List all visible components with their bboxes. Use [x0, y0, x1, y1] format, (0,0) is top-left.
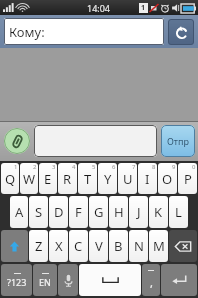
button[interactable]: Y [98, 163, 117, 194]
button[interactable]: Voice input [58, 264, 78, 296]
staticText: O [162, 170, 173, 188]
staticText: W [23, 170, 36, 188]
staticText: ?123 [7, 276, 27, 288]
staticText: 1 [14, 163, 18, 171]
button[interactable]: Enter [161, 264, 197, 296]
button[interactable]: Undo [168, 19, 194, 45]
button[interactable]: Shift [1, 230, 28, 262]
staticText: F [75, 203, 82, 221]
staticText: , [150, 275, 153, 290]
button[interactable]: E [39, 163, 57, 194]
button[interactable]: X [49, 230, 68, 262]
staticText: B [114, 237, 123, 255]
button[interactable]: T [78, 163, 97, 194]
button[interactable]: M [149, 230, 168, 262]
staticText: Q [5, 170, 16, 188]
staticText: 1 [141, 3, 146, 13]
staticText: 5 [92, 163, 96, 171]
button[interactable]: I [138, 163, 157, 194]
button[interactable]: Language [33, 264, 57, 296]
button[interactable]: Comma [142, 264, 160, 296]
button[interactable]: Z [29, 230, 48, 262]
button[interactable]: Q [1, 163, 19, 194]
staticText: 2 [33, 163, 37, 171]
staticText: 7 [132, 163, 136, 171]
staticText: J [137, 203, 141, 221]
staticText: S [35, 203, 43, 221]
staticText: L [175, 203, 182, 221]
button[interactable]: Space [79, 264, 141, 296]
button[interactable]: V [89, 230, 108, 262]
button[interactable]: D [49, 196, 68, 228]
button[interactable]: U [118, 163, 137, 194]
staticText: Z [35, 237, 43, 255]
button[interactable]: A [10, 196, 28, 228]
button[interactable]: S [29, 196, 48, 228]
button[interactable]: W [20, 163, 38, 194]
staticText: V [95, 237, 103, 255]
staticText: T [84, 170, 92, 188]
staticText: C [74, 237, 83, 255]
button[interactable]: C [69, 230, 88, 262]
staticText: M [153, 237, 165, 255]
button[interactable]: Кому: [4, 18, 164, 45]
staticText: N [134, 237, 144, 255]
staticText: K [154, 203, 163, 221]
button[interactable]: Backspace [169, 230, 197, 262]
staticText: P [184, 170, 192, 188]
staticText: H [114, 203, 124, 221]
staticText: E [44, 170, 52, 188]
staticText: 0 [192, 163, 196, 171]
button[interactable]: F [69, 196, 88, 228]
staticText: 4 [72, 163, 76, 171]
staticText: 14:04 [87, 2, 111, 14]
staticText: Отпр [167, 135, 189, 147]
staticText: 3 [52, 163, 56, 171]
button[interactable]: H [109, 196, 128, 228]
staticText: Кому: [9, 23, 45, 41]
button[interactable] [34, 125, 157, 157]
staticText: G [94, 203, 104, 221]
staticText: R [63, 170, 72, 188]
button[interactable]: N [129, 230, 148, 262]
button[interactable]: L [169, 196, 188, 228]
button[interactable]: B [109, 230, 128, 262]
button[interactable]: O [158, 163, 177, 194]
staticText: 8 [152, 163, 156, 171]
staticText: X [55, 237, 63, 255]
staticText: A [15, 203, 24, 221]
button[interactable]: G [89, 196, 108, 228]
staticText: 9 [172, 163, 176, 171]
staticText: D [54, 203, 64, 221]
button[interactable]: J [129, 196, 148, 228]
button[interactable]: Symbols [1, 264, 32, 296]
button[interactable]: Attach [4, 128, 30, 154]
staticText: EN [39, 276, 51, 288]
button[interactable]: K [149, 196, 168, 228]
button[interactable]: P [178, 163, 197, 194]
staticText: 6 [112, 163, 116, 171]
staticText: U [123, 170, 133, 188]
staticText: I [145, 170, 150, 188]
button[interactable]: Отпр [161, 125, 195, 157]
staticText: Y [104, 170, 112, 188]
button[interactable]: R [58, 163, 77, 194]
